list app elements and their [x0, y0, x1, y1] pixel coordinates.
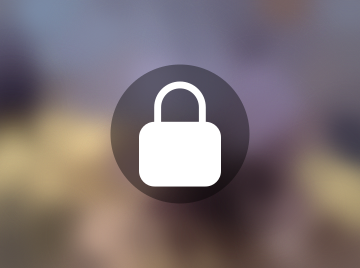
button[interactable]: Content locked: [110, 64, 249, 203]
